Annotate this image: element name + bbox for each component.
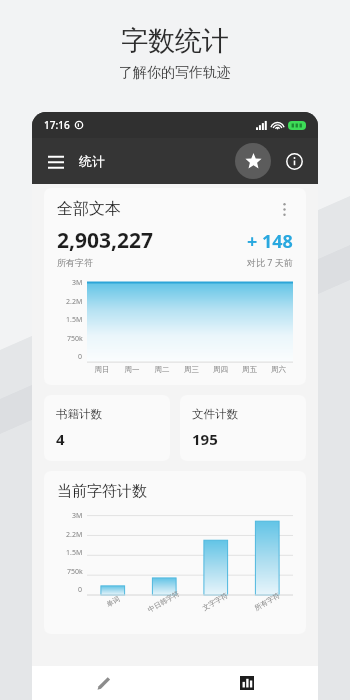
staticText: 全部文本 <box>57 199 121 219</box>
staticText: 统计 <box>79 153 105 169</box>
staticText: 中日韩字符 <box>146 589 181 614</box>
staticText: + 148 <box>247 229 293 254</box>
staticText: 书籍计数 <box>56 407 102 421</box>
button[interactable]: More options <box>275 200 293 218</box>
staticText: 2,903,227 <box>57 226 154 255</box>
button[interactable]: Favorite <box>235 143 271 179</box>
staticText: 周五 <box>235 365 264 374</box>
staticText: 750k <box>67 567 83 577</box>
staticText: 周四 <box>206 365 235 374</box>
staticText: 周三 <box>177 365 206 374</box>
staticText: 周二 <box>147 365 177 374</box>
staticText: 对比 7 天前 <box>247 256 293 268</box>
staticText: 了解你的写作轨迹 <box>119 64 231 82</box>
staticText: 17:16 <box>44 118 70 132</box>
button[interactable]: 文件计数 <box>180 395 306 461</box>
staticText: 3M <box>72 278 83 288</box>
staticText: 195 <box>192 429 218 449</box>
staticText: 所有字符 <box>57 257 93 268</box>
staticText: 3M <box>72 511 83 521</box>
staticText: 周六 <box>264 365 293 374</box>
button[interactable]: Menu <box>43 148 69 174</box>
button[interactable]: Write <box>32 666 175 700</box>
staticText: 所有字符 <box>253 591 281 612</box>
button[interactable]: Info <box>281 148 307 174</box>
button[interactable]: Statistics <box>175 666 318 700</box>
staticText: 4 <box>56 429 65 449</box>
staticText: 文字字符 <box>201 591 229 612</box>
staticText: 750k <box>67 334 83 344</box>
staticText: 1.5M <box>66 548 83 558</box>
button[interactable]: 当前字符计数 <box>44 471 306 634</box>
staticText: 2.2M <box>66 297 83 307</box>
staticText: 0 <box>78 585 83 595</box>
button[interactable]: 全部文本 <box>44 188 306 385</box>
staticText: 2.2M <box>66 530 83 540</box>
staticText: 周日 <box>87 365 117 374</box>
staticText: 当前字符计数 <box>57 482 147 501</box>
button[interactable]: 书籍计数 <box>44 395 170 461</box>
staticText: 1.5M <box>66 315 83 325</box>
staticText: 单词 <box>105 594 121 609</box>
staticText: 周一 <box>117 365 147 374</box>
staticText: 0 <box>78 352 83 362</box>
staticText: 文件计数 <box>192 407 238 421</box>
staticText: 字数统计 <box>121 24 229 58</box>
